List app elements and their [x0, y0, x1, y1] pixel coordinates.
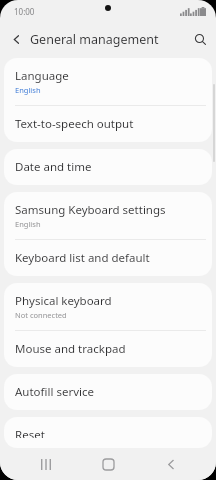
button[interactable]: Mouse and trackpad	[4, 331, 212, 367]
button[interactable]: Date and time	[4, 149, 212, 185]
button[interactable]: Language	[4, 58, 212, 105]
button[interactable]: Samsung Keyboard settings	[4, 192, 212, 239]
staticText: Autofill service	[15, 384, 94, 400]
staticText: Physical keyboard	[15, 293, 112, 309]
staticText: English	[15, 219, 41, 229]
button[interactable]: Back	[0, 23, 32, 55]
button[interactable]: Keyboard list and default	[4, 240, 212, 276]
button[interactable]: Recents	[29, 448, 63, 480]
button[interactable]: Search	[184, 23, 216, 55]
staticText: 10:00	[14, 6, 35, 17]
staticText: Date and time	[15, 159, 92, 175]
button[interactable]: Home	[91, 448, 125, 480]
button[interactable]: Text-to-speech output	[4, 106, 212, 142]
staticText: Text-to-speech output	[15, 116, 134, 132]
staticText: Mouse and trackpad	[15, 341, 126, 357]
staticText: Keyboard list and default	[15, 250, 150, 266]
staticText: Language	[15, 68, 69, 84]
staticText: English	[15, 85, 41, 95]
staticText: Samsung Keyboard settings	[15, 202, 166, 218]
button[interactable]: Reset	[4, 417, 212, 448]
button[interactable]: Back	[154, 448, 188, 480]
staticText: Not connected	[15, 310, 67, 320]
staticText: General management	[30, 31, 159, 48]
button[interactable]: Autofill service	[4, 374, 212, 410]
button[interactable]: Physical keyboard	[4, 283, 212, 330]
staticText: Reset	[15, 427, 45, 438]
